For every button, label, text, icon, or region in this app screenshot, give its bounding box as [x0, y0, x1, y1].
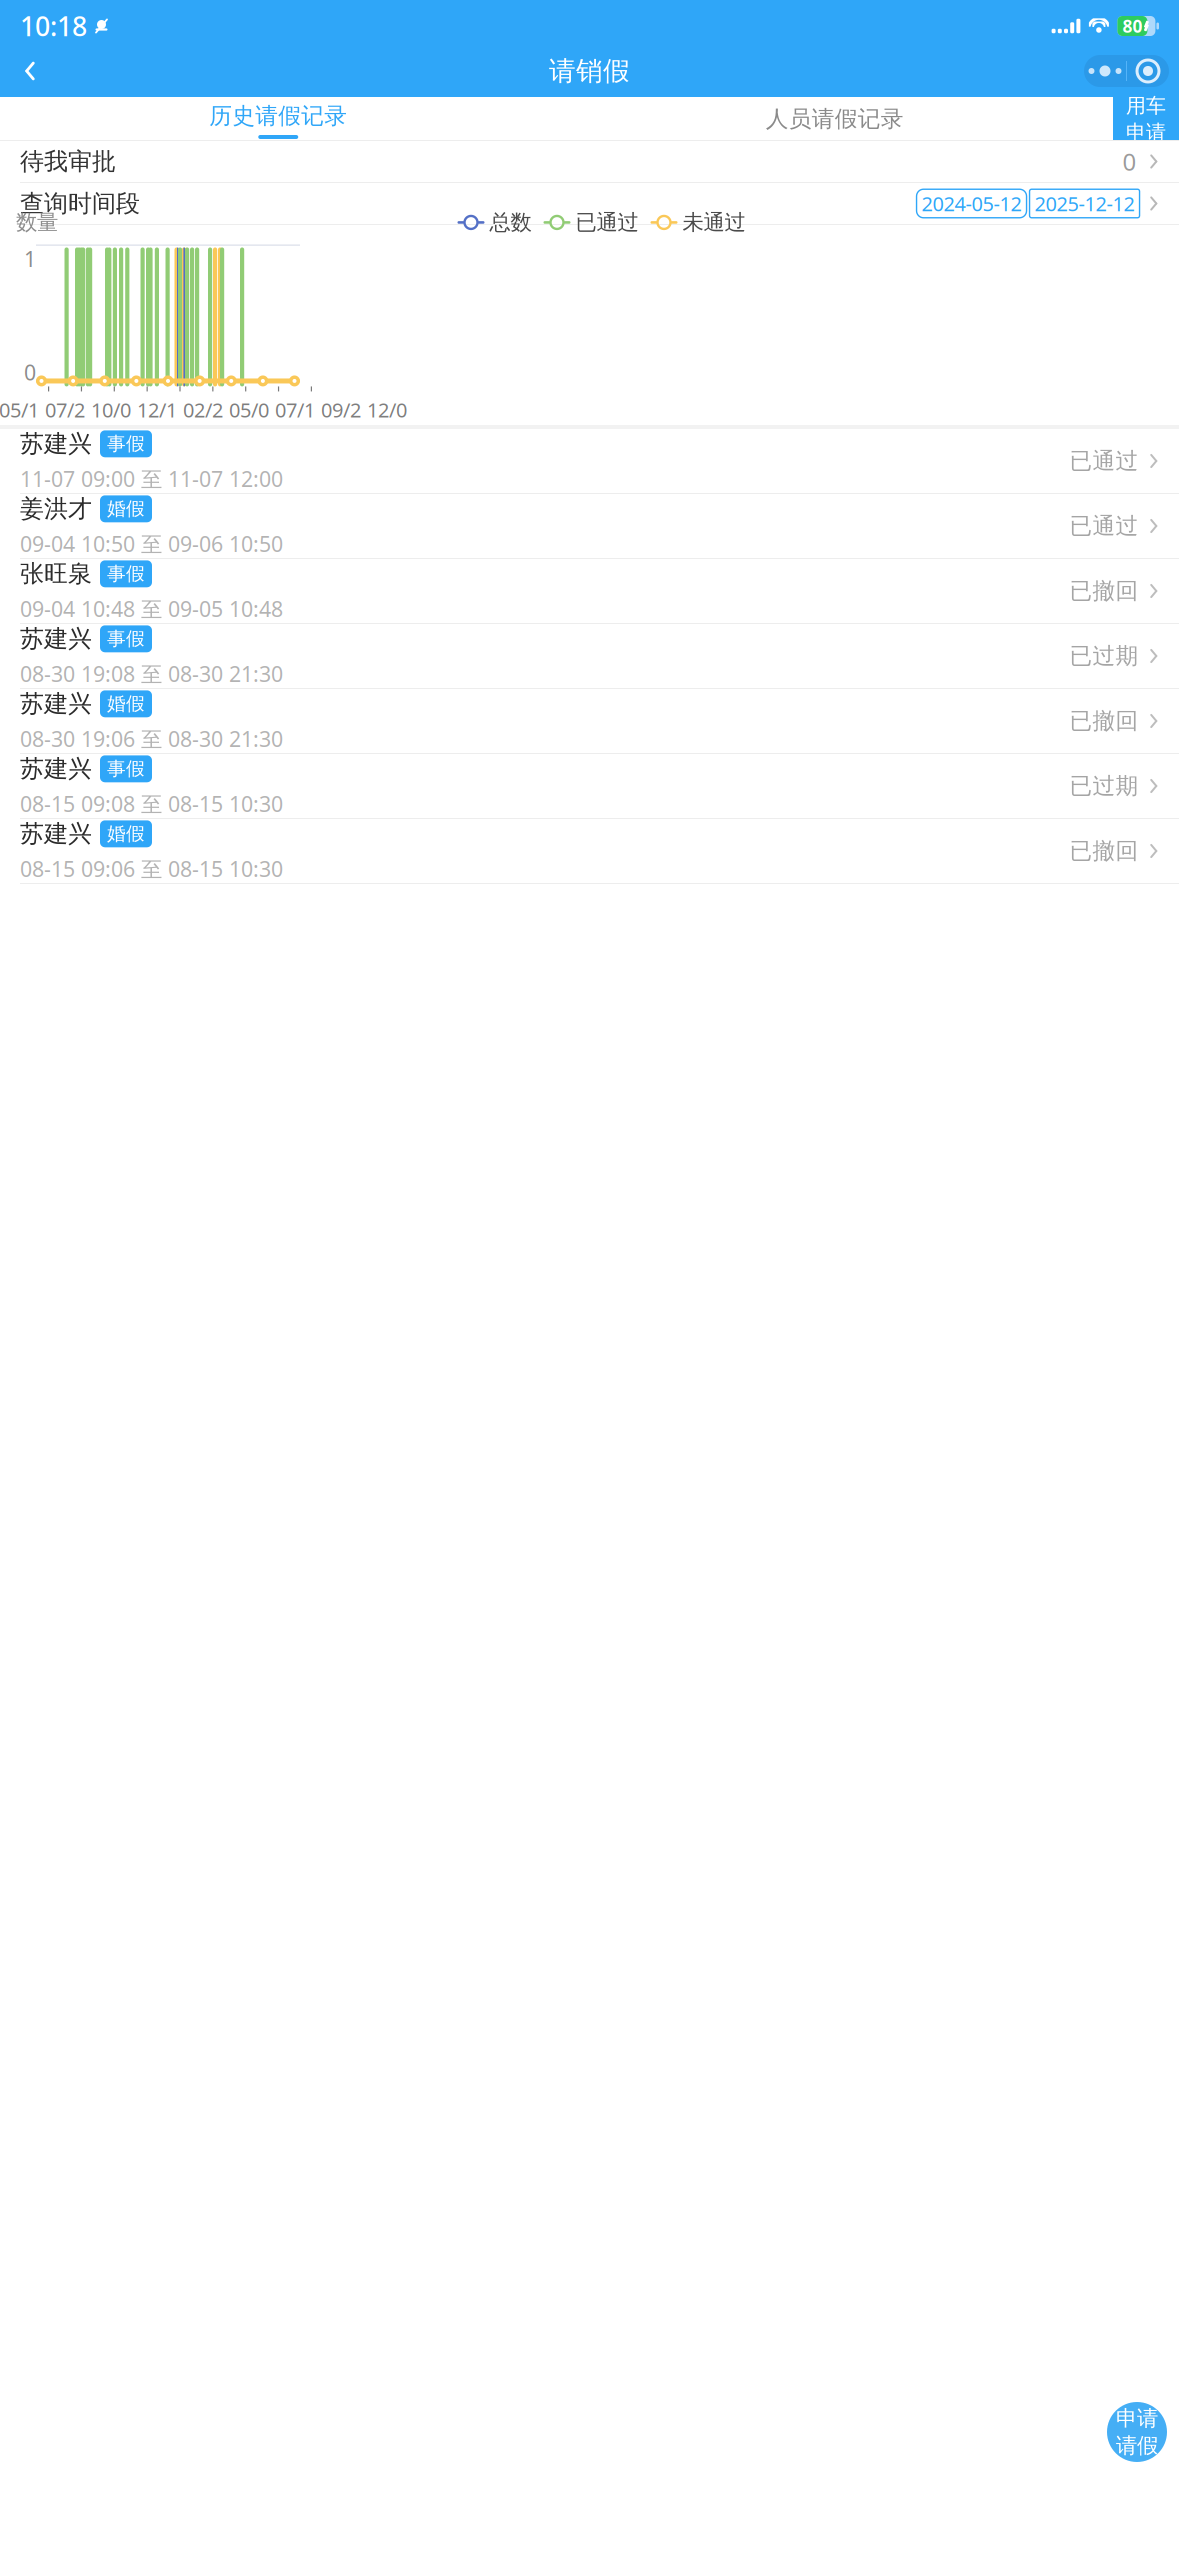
- staticText: 08-15 09:08 至 08-15 10:30: [20, 790, 283, 818]
- button[interactable]: 用车: [1113, 97, 1179, 141]
- staticText: 10/03: [91, 396, 131, 449]
- staticText: 总数: [489, 209, 531, 235]
- staticText: 09/28: [321, 396, 361, 449]
- button[interactable]: 申请: [1107, 2402, 1167, 2462]
- button[interactable]: 苏建兴: [0, 819, 1179, 884]
- staticText: 事假: [107, 757, 145, 780]
- staticText: 待我审批: [20, 147, 116, 176]
- staticText: 已撤回: [1069, 707, 1138, 735]
- button[interactable]: 苏建兴: [0, 754, 1179, 819]
- staticText: 11-07 09:00 至 11-07 12:00: [20, 465, 283, 493]
- staticText: 12/14: [137, 396, 177, 449]
- staticText: 08-15 09:06 至 08-15 10:30: [20, 855, 283, 883]
- staticText: 张旺泉: [20, 559, 92, 589]
- staticText: 已通过: [575, 209, 638, 235]
- staticText: 未通过: [682, 209, 745, 235]
- button[interactable]: 苏建兴: [0, 429, 1179, 494]
- button[interactable]: 历史请假记录: [0, 97, 556, 141]
- staticText: 10:18: [20, 8, 87, 44]
- staticText: 请销假: [549, 55, 630, 87]
- staticText: 申请: [1116, 2405, 1158, 2431]
- staticText: 已过期: [1069, 642, 1138, 670]
- staticText: 08-30 19:08 至 08-30 21:30: [20, 660, 283, 688]
- button[interactable]: 待我审批: [0, 141, 1179, 182]
- staticText: 事假: [107, 562, 145, 585]
- staticText: 08-30 19:06 至 08-30 21:30: [20, 725, 283, 753]
- staticText: 09-04 10:50 至 09-06 10:50: [20, 530, 283, 558]
- button[interactable]: 张旺泉: [0, 559, 1179, 624]
- staticText: 婚假: [107, 497, 145, 520]
- staticText: 事假: [107, 432, 145, 455]
- staticText: 婚假: [107, 692, 145, 715]
- staticText: 苏建兴: [20, 429, 92, 459]
- staticText: 数量: [16, 209, 58, 235]
- button[interactable]: 关闭: [1127, 55, 1169, 87]
- staticText: 0: [24, 358, 36, 386]
- staticText: 07/23: [45, 396, 85, 449]
- staticText: 事假: [107, 627, 145, 650]
- button[interactable]: 查询时间段: [0, 183, 1179, 224]
- staticText: 已通过: [1069, 447, 1138, 475]
- staticText: 已撤回: [1069, 577, 1138, 605]
- button[interactable]: 更多: [1084, 55, 1126, 87]
- staticText: 05/07: [229, 396, 269, 449]
- staticText: 05/12: [0, 396, 39, 449]
- staticText: 申请: [1126, 120, 1166, 145]
- staticText: 12/09: [367, 396, 407, 449]
- staticText: 苏建兴: [20, 689, 92, 719]
- staticText: 已撤回: [1069, 837, 1138, 865]
- staticText: 历史请假记录: [209, 102, 347, 130]
- staticText: 姜洪才: [20, 494, 92, 524]
- staticText: 80: [1122, 14, 1142, 37]
- staticText: 用车: [1126, 93, 1166, 118]
- staticText: 已过期: [1069, 772, 1138, 800]
- staticText: 02/24: [183, 396, 223, 449]
- staticText: 人员请假记录: [766, 105, 904, 133]
- staticText: 0: [1122, 146, 1136, 177]
- button[interactable]: 返回: [8, 49, 52, 93]
- staticText: 苏建兴: [20, 754, 92, 784]
- staticText: 2025-12-12: [1034, 190, 1134, 217]
- staticText: 请假: [1116, 2432, 1158, 2459]
- staticText: 已通过: [1069, 512, 1138, 540]
- staticText: 09-04 10:48 至 09-05 10:48: [20, 595, 283, 623]
- staticText: 查询时间段: [20, 189, 140, 218]
- staticText: 婚假: [107, 822, 145, 845]
- button[interactable]: 姜洪才: [0, 494, 1179, 559]
- staticText: 1: [24, 244, 36, 273]
- staticText: 2024-05-12: [921, 190, 1021, 217]
- staticText: 苏建兴: [20, 819, 92, 849]
- button[interactable]: 苏建兴: [0, 624, 1179, 689]
- button[interactable]: 人员请假记录: [556, 97, 1113, 141]
- staticText: 苏建兴: [20, 624, 92, 654]
- staticText: 07/18: [275, 396, 315, 449]
- button[interactable]: 苏建兴: [0, 689, 1179, 754]
